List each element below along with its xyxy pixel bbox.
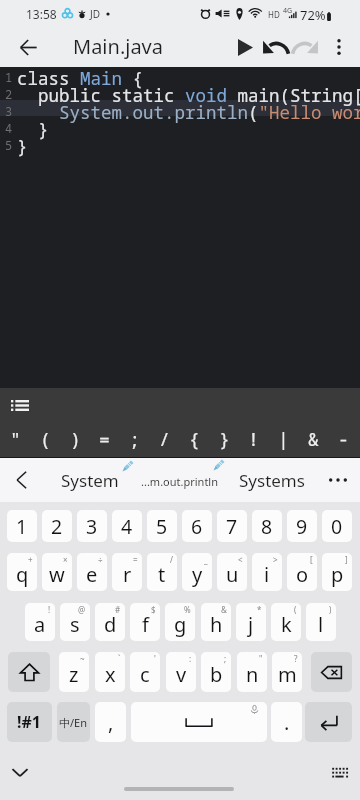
staticText: $	[151, 604, 156, 615]
button[interactable]: !#1	[7, 702, 52, 742]
button[interactable]: 7	[217, 510, 247, 542]
button[interactable]: (	[30, 426, 60, 452]
staticText: #	[115, 604, 121, 615]
button[interactable]: r	[112, 553, 142, 591]
button[interactable]: o	[287, 553, 317, 591]
staticText: HD	[268, 9, 280, 20]
button[interactable]: Shift	[8, 652, 50, 692]
button[interactable]: |	[268, 426, 298, 452]
staticText: 4	[121, 513, 133, 540]
button[interactable]: Undo	[261, 33, 289, 61]
button[interactable]: 5	[147, 510, 177, 542]
staticText: JD	[90, 7, 101, 21]
button[interactable]: 8	[252, 510, 282, 542]
button[interactable]: .	[271, 702, 302, 742]
staticText: 3	[86, 513, 98, 540]
staticText: "	[10, 427, 21, 452]
button[interactable]: 6	[182, 510, 212, 542]
staticText: &	[221, 604, 227, 615]
button[interactable]: Run	[232, 34, 258, 60]
staticText: 4G	[283, 6, 293, 16]
button[interactable]: d	[95, 603, 125, 641]
button[interactable]: q	[7, 553, 37, 591]
staticText: System	[61, 469, 119, 492]
button[interactable]: 0	[322, 510, 352, 542]
button[interactable]: ;	[119, 426, 149, 452]
button[interactable]: z	[59, 652, 89, 692]
button[interactable]: v	[166, 652, 196, 692]
button[interactable]: &	[298, 426, 328, 452]
staticText: }	[219, 427, 230, 452]
button[interactable]: i	[252, 553, 282, 591]
button[interactable]: n	[237, 652, 267, 692]
button[interactable]: More options	[325, 33, 353, 61]
staticText: 2	[51, 513, 63, 540]
button[interactable]: g	[165, 603, 195, 641]
staticText: (	[294, 604, 297, 615]
staticText: k	[281, 611, 292, 638]
button[interactable]: w	[42, 553, 72, 591]
staticText: -	[338, 427, 349, 452]
button[interactable]: l	[306, 603, 336, 641]
staticText: q	[16, 561, 29, 588]
staticText: 5	[5, 137, 13, 153]
staticText: o	[296, 561, 309, 588]
button[interactable]: k	[271, 603, 301, 641]
staticText: class Main {	[17, 66, 360, 90]
button[interactable]: Back	[12, 31, 44, 63]
button[interactable]: }	[209, 426, 239, 452]
button[interactable]: h	[201, 603, 231, 641]
button[interactable]: 3	[77, 510, 107, 542]
button[interactable]: 2	[42, 510, 72, 542]
staticText: w	[49, 561, 65, 588]
button[interactable]: Space	[131, 702, 267, 742]
button[interactable]: u	[217, 553, 247, 591]
button[interactable]: f	[130, 603, 160, 641]
button[interactable]: 中/En	[57, 702, 90, 742]
staticText: e	[86, 561, 98, 588]
staticText: '	[154, 653, 156, 664]
button[interactable]: "	[0, 426, 30, 452]
button[interactable]: ,	[95, 702, 126, 742]
button[interactable]: t	[147, 553, 177, 591]
button[interactable]: Change keyboard	[325, 758, 353, 786]
button[interactable]: s	[60, 603, 90, 641]
button[interactable]: j	[236, 603, 266, 641]
button[interactable]: 4	[112, 510, 142, 542]
button[interactable]: Redo	[291, 33, 319, 61]
button[interactable]: p	[322, 553, 352, 591]
button[interactable]: Backspace	[311, 652, 352, 692]
button[interactable]: b	[201, 652, 231, 692]
button[interactable]: =	[89, 426, 119, 452]
button[interactable]: /	[149, 426, 179, 452]
staticText: |	[278, 427, 289, 452]
button[interactable]: Previous suggestions	[7, 466, 35, 494]
staticText: public static void main(String[	[17, 83, 360, 107]
staticText: %	[184, 604, 191, 615]
button[interactable]: !	[238, 426, 268, 452]
button[interactable]: )	[60, 426, 90, 452]
staticText: Main.java	[73, 33, 163, 60]
button[interactable]: Enter	[305, 702, 352, 742]
staticText: (	[40, 427, 51, 452]
button[interactable]: a	[25, 603, 55, 641]
staticText: ~	[80, 653, 85, 664]
button[interactable]: c	[130, 652, 160, 692]
staticText: 6	[191, 513, 203, 540]
button[interactable]: {	[179, 426, 209, 452]
button[interactable]: e	[77, 553, 107, 591]
button[interactable]: 1	[7, 510, 37, 542]
button[interactable]: -	[328, 426, 358, 452]
staticText: j	[248, 611, 254, 638]
staticText: m	[278, 661, 297, 688]
button[interactable]: Hide keyboard	[6, 758, 34, 786]
button[interactable]: More suggestions	[324, 466, 352, 494]
staticText: 1	[16, 513, 28, 540]
button[interactable]: y	[182, 553, 212, 591]
button[interactable]: m	[272, 652, 302, 692]
staticText: .	[284, 709, 290, 736]
button[interactable]: Open file list	[5, 390, 35, 420]
button[interactable]: x	[95, 652, 125, 692]
button[interactable]: 9	[287, 510, 317, 542]
staticText: i	[264, 561, 270, 588]
